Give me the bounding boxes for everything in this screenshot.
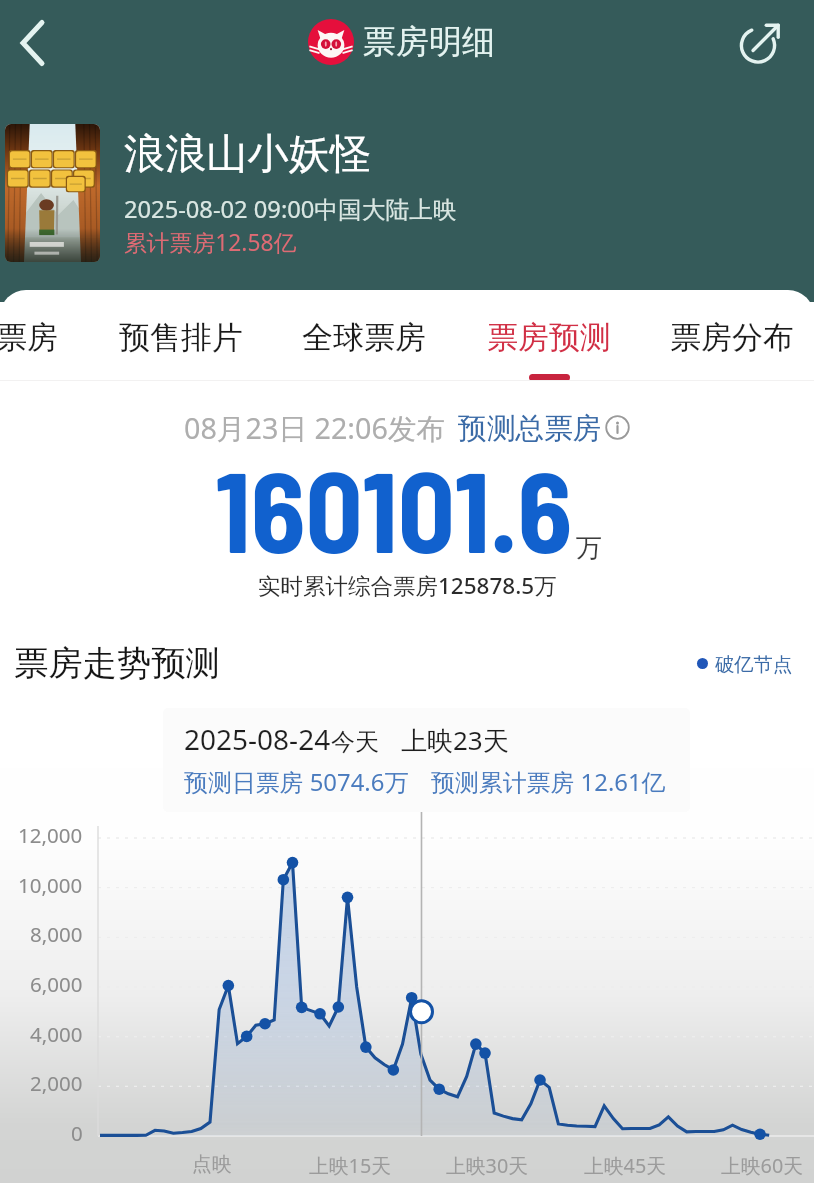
staticText: 2,000 [30,1069,83,1097]
staticText: 上映30天 [446,1152,529,1179]
staticText: 破亿节点 [715,652,793,676]
button[interactable]: 全球票房 [298,290,430,380]
staticText: 6,000 [30,970,83,998]
button[interactable]: 票房 [0,290,63,380]
staticText: 上映45天 [584,1152,667,1179]
staticText: 全球票房 [302,318,426,357]
staticText: 2025-08-02 09:00中国大陆上映 [124,193,457,225]
staticText: 预售排片 [119,318,243,357]
staticText: 累计票房12.58亿 [124,227,297,258]
staticText: 预测总票房 [458,410,602,446]
staticText: 点映 [192,1152,232,1177]
staticText: 上映23天 [401,722,509,758]
button[interactable]: 票房预测 [483,290,615,380]
staticText: 预测累计票房 12.61亿 [431,765,666,798]
staticText: 2025-08-24 [184,720,331,758]
staticText: 160101.6 [215,441,573,575]
staticText: 0 [71,1119,83,1147]
button[interactable]: 预售排片 [115,290,247,380]
staticText: 票房明细 [363,21,495,63]
staticText: 万 [576,532,602,565]
button[interactable]: 浪浪山小妖怪 [5,124,457,262]
button[interactable]: 票房分布 [666,290,798,380]
staticText: 票房分布 [670,318,794,357]
staticText: 预测日票房 5074.6万 [184,765,409,798]
staticText: 上映60天 [721,1152,804,1179]
button[interactable]: Back [2,12,64,74]
staticText: 上映15天 [309,1152,392,1179]
staticText: 8,000 [30,920,83,948]
staticText: 今天 [331,727,379,757]
staticText: 票房走势预测 [14,642,220,685]
staticText: 08月23日 22:06发布 [184,408,446,447]
button[interactable]: Share [728,12,790,74]
staticText: 票房 [0,318,58,357]
staticText: 浪浪山小妖怪 [124,128,372,180]
staticText: 12,000 [18,821,83,849]
staticText: 票房预测 [487,318,611,357]
staticText: 4,000 [30,1020,83,1048]
staticText: 实时累计综合票房125878.5万 [258,570,557,601]
staticText: 10,000 [18,871,83,899]
